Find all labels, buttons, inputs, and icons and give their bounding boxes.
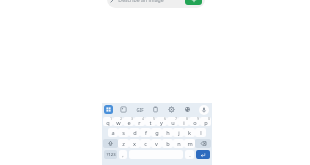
staticText: e [127, 119, 131, 126]
staticText: h [166, 129, 170, 137]
staticText: w [116, 119, 121, 126]
staticText: ?123 [106, 152, 116, 158]
button[interactable]: 9 [189, 117, 200, 126]
button[interactable]: d [129, 128, 140, 137]
staticText: k [188, 129, 191, 137]
staticText: b [166, 140, 170, 148]
staticText: 5 [153, 117, 155, 121]
staticText: f [145, 129, 147, 137]
staticText: u [171, 119, 175, 126]
button[interactable]: v [151, 139, 162, 148]
staticText: Describe an image [118, 0, 164, 3]
staticText: q [106, 119, 110, 126]
button[interactable]: z [118, 139, 129, 148]
button[interactable]: 1 [103, 117, 113, 126]
button[interactable]: 6 [156, 117, 167, 126]
staticText: n [177, 140, 181, 148]
button[interactable]: Shift [103, 139, 118, 148]
button[interactable]: , [119, 150, 127, 159]
button[interactable]: 7 [167, 117, 178, 126]
button[interactable]: 5 [145, 117, 156, 126]
button[interactable]: g [151, 128, 162, 137]
staticText: GIF [136, 107, 144, 113]
staticText: g [155, 129, 159, 137]
button[interactable]: 8 [178, 117, 189, 126]
button[interactable]: Settings [167, 105, 176, 114]
staticText: . [189, 151, 191, 158]
staticText: v [155, 140, 158, 148]
staticText: r [138, 119, 141, 126]
button[interactable]: 0 [200, 117, 211, 126]
button[interactable]: h [162, 128, 173, 137]
button[interactable]: x [129, 139, 140, 148]
button[interactable]: Enter [196, 150, 210, 159]
button[interactable]: 4 [134, 117, 145, 126]
button[interactable]: c [140, 139, 151, 148]
button[interactable]: Stickers [119, 105, 128, 114]
staticText: s [122, 129, 125, 137]
button[interactable]: a [108, 128, 118, 137]
staticText: 1 [110, 117, 112, 121]
button[interactable]: GIF [134, 105, 145, 114]
staticText: , [122, 151, 124, 158]
button[interactable]: 2 [113, 117, 123, 126]
staticText: l [200, 129, 202, 137]
staticText: t [149, 119, 152, 126]
staticText: j [178, 129, 180, 137]
staticText: i [183, 119, 185, 126]
button[interactable]: Voice input [199, 105, 209, 115]
button[interactable]: Clipboard [151, 105, 160, 114]
staticText: x [133, 140, 136, 148]
staticText: 2 [120, 117, 122, 121]
staticText: a [111, 129, 115, 137]
button[interactable]: Describe an image [107, 0, 205, 8]
button[interactable]: n [173, 139, 184, 148]
button[interactable]: s [118, 128, 129, 137]
staticText: 7 [175, 117, 177, 121]
button[interactable]: Backspace [195, 139, 211, 148]
button[interactable]: l [195, 128, 206, 137]
button[interactable]: 3 [123, 117, 134, 126]
button[interactable]: k [184, 128, 195, 137]
button[interactable]: b [162, 139, 173, 148]
staticText: 8 [186, 117, 188, 121]
staticText: c [144, 140, 147, 148]
button[interactable]: j [173, 128, 184, 137]
staticText: 0 [208, 117, 210, 121]
button[interactable]: m [184, 139, 195, 148]
staticText: d [133, 129, 137, 137]
button[interactable]: Toolbar [104, 105, 113, 114]
button[interactable]: Add [185, 0, 202, 5]
staticText: 3 [131, 117, 133, 121]
staticText: o [193, 119, 197, 126]
button[interactable]: Themes [183, 105, 192, 114]
button[interactable]: . [185, 150, 194, 159]
staticText: z [122, 140, 125, 148]
staticText: y [160, 119, 163, 126]
staticText: m [187, 140, 193, 148]
button[interactable]: ?123 [104, 150, 117, 159]
button[interactable]: f [140, 128, 151, 137]
staticText: 6 [164, 117, 166, 121]
staticText: 9 [197, 117, 199, 121]
staticText: 4 [142, 117, 144, 121]
staticText: p [204, 119, 208, 126]
